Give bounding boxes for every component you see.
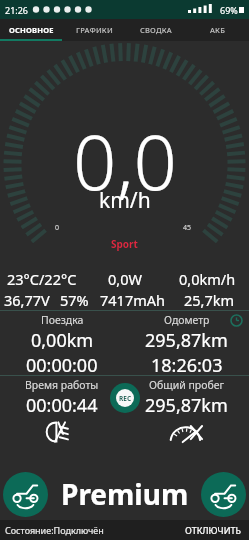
staticText: Состояние:Подключён xyxy=(5,524,104,536)
staticText: Premium xyxy=(61,475,189,513)
staticText: СВОДКА xyxy=(140,25,172,35)
staticText: Время работы xyxy=(25,378,99,392)
staticText: Поездка xyxy=(41,313,84,327)
staticText: 57% xyxy=(60,290,89,310)
staticText: 0,0 xyxy=(73,109,177,213)
staticText: 7417mAh xyxy=(100,290,165,310)
button[interactable]: Record trip xyxy=(110,383,140,413)
button[interactable]: ОТКЛЮЧИТЬ xyxy=(182,522,244,538)
staticText: 0 xyxy=(55,223,60,233)
staticText: 0,0W xyxy=(108,269,142,289)
staticText: km/h xyxy=(99,186,151,215)
button[interactable]: Scooter profile xyxy=(3,472,48,517)
staticText: Общий пробег xyxy=(149,378,225,392)
button[interactable]: СВОДКА xyxy=(125,19,187,41)
staticText: ОТКЛЮЧИТЬ xyxy=(185,524,241,536)
staticText: 00:00:44 xyxy=(26,393,98,414)
staticText: АКБ xyxy=(210,25,226,35)
staticText: 23°C/22°C xyxy=(7,269,77,289)
button[interactable]: Reset odometer xyxy=(230,314,243,327)
staticText: ОСНОВНОЕ xyxy=(9,25,54,35)
staticText: 69% xyxy=(220,4,238,16)
staticText: 21:26 xyxy=(5,4,29,16)
button[interactable]: Cruise control xyxy=(167,420,207,444)
staticText: 25,7km xyxy=(184,290,235,310)
staticText: 00:00:00 xyxy=(26,353,98,375)
button[interactable]: Headlight xyxy=(42,420,82,444)
staticText: 0,0km/h xyxy=(179,269,236,289)
staticText: 36,77V xyxy=(4,290,50,310)
staticText: Sport xyxy=(111,237,138,251)
button[interactable]: Scooter settings xyxy=(201,472,246,517)
button[interactable]: АКБ xyxy=(187,19,249,41)
staticText: 295,87km xyxy=(145,393,228,414)
staticText: Одометр xyxy=(164,313,210,327)
staticText: REC xyxy=(119,394,132,403)
button[interactable]: ГРАФИКИ xyxy=(63,19,125,41)
button[interactable]: ОСНОВНОЕ xyxy=(0,19,63,41)
staticText: 18:26:03 xyxy=(151,353,223,375)
staticText: 45 xyxy=(183,223,192,233)
staticText: 0,00km xyxy=(31,328,94,353)
staticText: ГРАФИКИ xyxy=(76,25,113,35)
staticText: 295,87km xyxy=(145,328,228,353)
